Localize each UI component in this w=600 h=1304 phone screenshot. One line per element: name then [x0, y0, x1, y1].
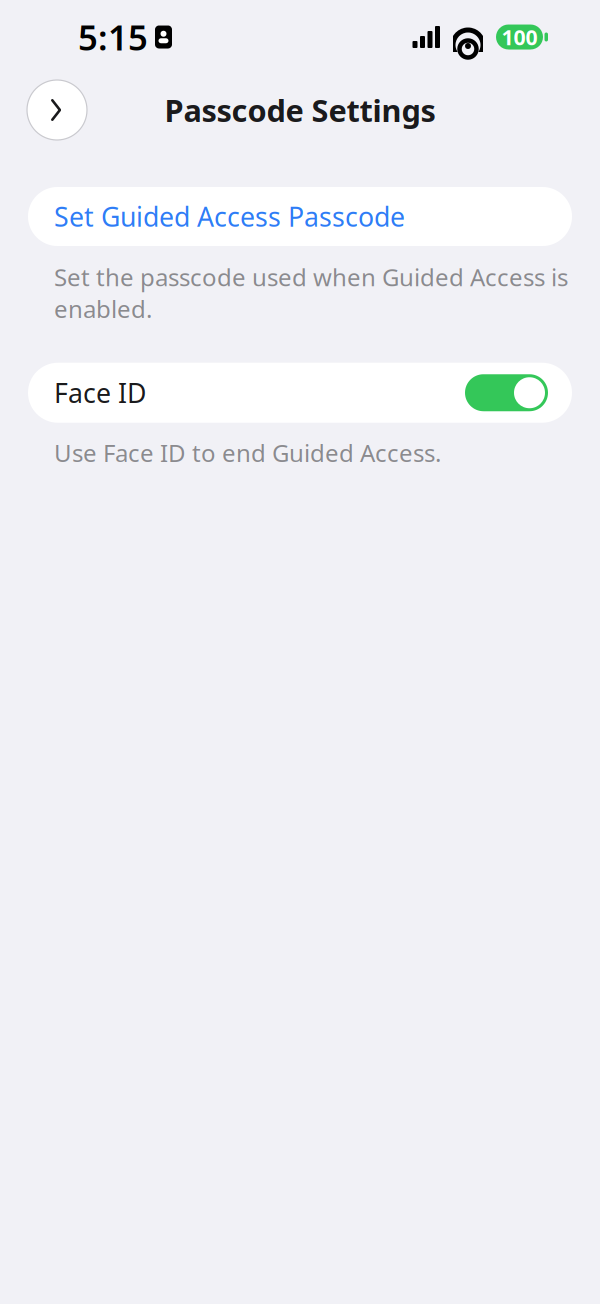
staticText: Use Face ID to end Guided Access.: [54, 437, 441, 469]
staticText: 5:15: [78, 14, 148, 60]
staticText: 100: [501, 23, 537, 51]
staticText: Passcode Settings: [164, 90, 435, 130]
staticText: Set Guided Access Passcode: [54, 199, 405, 234]
button[interactable]: Back: [27, 80, 87, 140]
staticText: Face ID: [54, 375, 146, 410]
staticText: Set the passcode used when Guided Access…: [54, 261, 568, 325]
button[interactable]: Face ID: [28, 363, 572, 423]
button[interactable]: Set Guided Access Passcode: [28, 187, 572, 246]
